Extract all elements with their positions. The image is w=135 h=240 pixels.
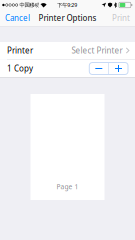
- staticText: Printer: [7, 45, 33, 56]
- button[interactable]: Printer: [0, 42, 135, 59]
- staticText: Page 1: [56, 182, 78, 191]
- button[interactable]: Print: [106, 10, 135, 26]
- staticText: 下午9:29: [57, 1, 77, 9]
- staticText: Print: [112, 13, 130, 23]
- button[interactable]: Increase copies: [109, 62, 128, 74]
- button[interactable]: Decrease copies: [89, 62, 108, 74]
- staticText: Select Printer: [71, 45, 122, 56]
- staticText: 1 Copy: [7, 63, 33, 74]
- button[interactable]: Cancel: [0, 10, 36, 26]
- staticText: Printer Options: [38, 13, 96, 23]
- staticText: Cancel: [5, 13, 30, 23]
- staticText: 中国移动: [19, 2, 39, 8]
